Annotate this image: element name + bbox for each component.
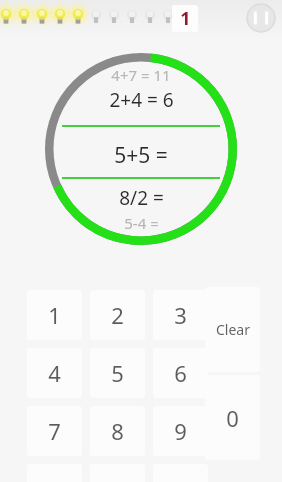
button[interactable]: 7 <box>27 406 82 456</box>
button[interactable]: 1 <box>27 290 82 340</box>
staticText: 1 <box>180 6 191 31</box>
staticText: 5+5 = <box>114 141 168 170</box>
button[interactable]: 8 <box>90 406 145 456</box>
staticText: 5 <box>111 358 124 388</box>
staticText: 8/2 = <box>119 185 164 211</box>
staticText: 9 <box>174 416 187 446</box>
staticText: 8 <box>111 416 124 446</box>
staticText: 1 <box>48 300 61 330</box>
button[interactable]: Pause <box>246 3 276 33</box>
button[interactable]: Clear <box>205 287 260 372</box>
staticText: 4+7 = 11 <box>111 65 171 85</box>
staticText: 5-4 = <box>124 213 159 233</box>
staticText: Clear <box>216 320 250 339</box>
staticText: 2 <box>111 300 124 330</box>
staticText: 6 <box>174 358 187 388</box>
button[interactable]: 4 <box>27 348 82 398</box>
button[interactable]: 3 <box>153 290 208 340</box>
button[interactable]: 5 <box>90 348 145 398</box>
button[interactable]: 9 <box>153 406 208 456</box>
staticText: 7 <box>48 416 61 446</box>
staticText: 3 <box>174 300 187 330</box>
staticText: 0 <box>226 403 239 433</box>
staticText: 4 <box>48 358 61 388</box>
button[interactable]: 0 <box>205 375 260 460</box>
button[interactable]: 1 <box>172 5 198 32</box>
staticText: 2+4 = 6 <box>109 87 174 113</box>
button[interactable]: 6 <box>153 348 208 398</box>
button[interactable]: 2 <box>90 290 145 340</box>
